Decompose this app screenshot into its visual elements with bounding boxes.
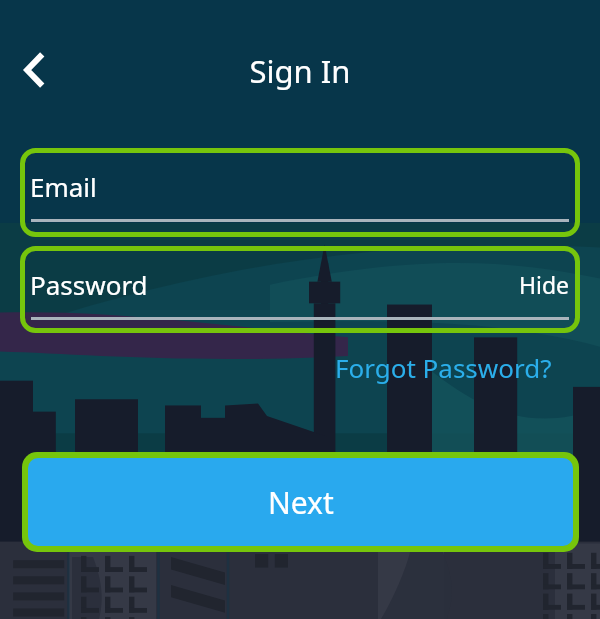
button[interactable]: Email <box>20 148 580 237</box>
staticText: Hide <box>519 269 570 300</box>
staticText: Email <box>30 169 97 204</box>
button[interactable]: Next <box>22 452 579 552</box>
staticText: Next <box>268 482 334 523</box>
button[interactable]: Back <box>10 44 62 96</box>
staticText: Sign In <box>0 50 600 619</box>
staticText: Password <box>30 267 148 302</box>
staticText: Forgot Password? <box>335 350 552 385</box>
button[interactable]: Hide <box>519 269 570 300</box>
button[interactable]: Forgot Password? <box>335 350 552 385</box>
button[interactable]: Password <box>20 246 580 333</box>
